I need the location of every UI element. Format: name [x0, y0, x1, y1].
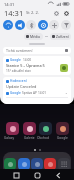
- staticText: Google: [10, 58, 21, 62]
- button[interactable]: Aplikace: [58, 158, 70, 170]
- staticText: Update Canceled: [6, 84, 37, 89]
- button[interactable]: Poslední: [11, 170, 21, 180]
- button[interactable]: Google: [3, 56, 71, 75]
- staticText: 14:31: [4, 2, 15, 7]
- button[interactable]: YouTube: [44, 158, 56, 170]
- button[interactable]: Internet: [31, 158, 43, 170]
- button[interactable]: Zprávy: [18, 158, 30, 170]
- staticText: St 2. 2.: [26, 10, 40, 16]
- button[interactable]: Přepínač 1: [15, 20, 25, 30]
- button[interactable]: Rozbalit panel: [29, 43, 45, 45]
- button[interactable]: Nastavení: [52, 9, 60, 17]
- staticText: ⌄: [65, 91, 68, 95]
- button[interactable]: Napájení: [62, 9, 70, 17]
- button[interactable]: Média: [24, 33, 43, 40]
- staticText: 15° aktuální stav: [6, 69, 31, 73]
- button[interactable]: Přepínač 2: [26, 20, 36, 30]
- button[interactable]: Galaxy Store: [4, 122, 20, 140]
- staticText: Média: [30, 34, 41, 39]
- button[interactable]: Hodnocení: [3, 77, 71, 104]
- button[interactable]: Zpět: [53, 170, 63, 180]
- button[interactable]: Přepínač 0: [3, 20, 13, 30]
- button[interactable]: Google: [54, 122, 70, 140]
- button[interactable]: Tichá oznámení: [3, 47, 71, 54]
- staticText: Google: [10, 91, 21, 95]
- button[interactable]: Telefon: [4, 158, 16, 170]
- staticText: Zařízení: [56, 34, 69, 39]
- staticText: Google: [57, 136, 68, 140]
- staticText: Tichá oznámení: [6, 48, 33, 53]
- staticText: Stanice 5 – Úpravna 5: [6, 63, 45, 68]
- staticText: Hodnocení: [10, 79, 27, 83]
- staticText: Galerie: [24, 136, 35, 140]
- staticText: Obchod Play: [37, 136, 53, 140]
- button[interactable]: Přepínač 3: [38, 20, 48, 30]
- button[interactable]: Galerie: [21, 122, 37, 140]
- button[interactable]: Přepínač 5: [61, 20, 71, 30]
- button[interactable]: Zařízení: [50, 33, 71, 40]
- button[interactable]: Domů: [32, 170, 42, 180]
- button[interactable]: Obchod Play: [37, 122, 53, 140]
- staticText: 14:01: [38, 91, 47, 95]
- button[interactable]: Přepínač 4: [49, 20, 59, 30]
- staticText: Galaxy Store: [4, 136, 20, 140]
- staticText: 14:00: [23, 58, 32, 62]
- staticText: Správa AP: [22, 91, 37, 95]
- staticText: 14:31: [4, 8, 24, 18]
